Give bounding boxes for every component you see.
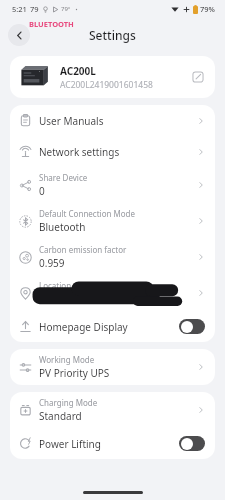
staticText: 79 bbox=[30, 4, 39, 14]
button[interactable]: Default Connection Mode bbox=[10, 203, 215, 239]
staticText bbox=[39, 292, 42, 306]
staticText: PV Priority UPS bbox=[39, 366, 110, 380]
button[interactable]: Homepage Display bbox=[10, 311, 215, 342]
button[interactable]: Share Device bbox=[10, 167, 215, 203]
staticText: 79° bbox=[61, 5, 71, 13]
button[interactable]: Working Mode bbox=[10, 349, 215, 385]
button[interactable]: Network settings bbox=[10, 136, 215, 167]
staticText: AC200L bbox=[60, 64, 96, 78]
staticText: Standard bbox=[39, 409, 82, 423]
button[interactable]: Location bbox=[10, 275, 215, 311]
staticText: Network settings bbox=[39, 145, 197, 159]
staticText: 0 bbox=[39, 184, 45, 198]
button[interactable]: AC200L bbox=[10, 56, 215, 98]
button[interactable]: Power Lifting toggle bbox=[179, 436, 205, 451]
staticText: AC200L2419001601458 bbox=[60, 79, 153, 91]
staticText: Share Device bbox=[39, 172, 88, 183]
staticText: User Manuals bbox=[39, 114, 197, 128]
staticText: Default Connection Mode bbox=[39, 208, 136, 219]
staticText: Bluetooth bbox=[39, 220, 86, 234]
button[interactable]: User Manuals bbox=[10, 105, 215, 136]
staticText: 79% bbox=[200, 4, 215, 14]
staticText: Settings bbox=[89, 27, 136, 43]
button[interactable]: Charging Mode bbox=[10, 392, 215, 428]
button[interactable]: Homepage Display toggle bbox=[179, 319, 205, 334]
staticText: 0.959 bbox=[39, 256, 65, 270]
staticText: Working Mode bbox=[39, 354, 95, 365]
button[interactable]: Edit device name bbox=[189, 68, 207, 86]
button[interactable]: Carbon emission factor bbox=[10, 239, 215, 275]
staticText: Carbon emission factor bbox=[39, 244, 127, 255]
staticText: Location bbox=[39, 280, 72, 291]
staticText: 5:21 bbox=[12, 4, 27, 14]
button[interactable]: Power Lifting bbox=[10, 428, 215, 459]
staticText: Power Lifting bbox=[39, 437, 179, 451]
staticText: Homepage Display bbox=[39, 320, 179, 334]
staticText: BLUETOOTH bbox=[29, 19, 74, 29]
button[interactable]: Back bbox=[8, 24, 30, 46]
staticText: Charging Mode bbox=[39, 397, 98, 408]
